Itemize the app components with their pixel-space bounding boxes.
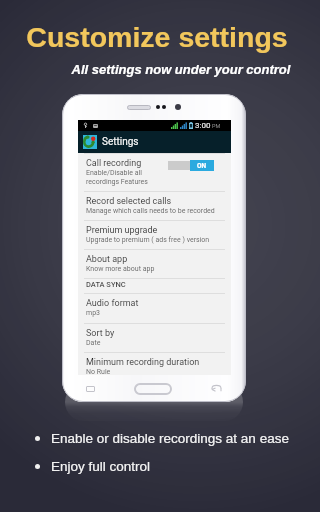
button[interactable]: Call recording <box>78 153 231 191</box>
staticText: Enable/Disable all recordings Features <box>86 169 148 186</box>
staticText: Enable or disable recordings at an ease <box>51 431 289 446</box>
staticText: ON <box>197 162 207 170</box>
staticText: All settings now under your control <box>21 62 320 77</box>
button[interactable]: Minimum recording duration <box>78 352 231 375</box>
staticText: Manage which calls needs to be recorded <box>86 207 215 215</box>
staticText: Sort by <box>86 328 115 339</box>
button[interactable]: Premium upgrade <box>78 220 231 249</box>
staticText: About app <box>86 254 128 265</box>
staticText: DATA SYNC <box>86 280 126 289</box>
button[interactable]: Audio format <box>78 293 231 323</box>
staticText: Minimum recording duration <box>86 357 200 368</box>
staticText: Upgrade to premium ( ads free ) version <box>86 236 210 244</box>
staticText: Customize settings <box>0 21 317 53</box>
button[interactable]: ON <box>168 160 214 171</box>
staticText: Premium upgrade <box>86 225 158 236</box>
staticText: Audio format <box>86 298 139 309</box>
staticText: Date <box>86 339 101 347</box>
button[interactable]: Sort by <box>78 323 231 352</box>
staticText: No Rule <box>86 368 111 375</box>
button[interactable]: About app <box>78 249 231 278</box>
staticText: Enjoy full control <box>51 459 151 474</box>
staticText: mp3 <box>86 309 101 317</box>
staticText: PM <box>212 123 221 129</box>
staticText: Record selected calls <box>86 196 172 207</box>
staticText: Settings <box>102 136 139 148</box>
staticText: 3:00 <box>195 121 211 130</box>
staticText: Call recording <box>86 158 142 169</box>
staticText: Know more about app <box>86 265 155 273</box>
button[interactable]: Record selected calls <box>78 191 231 220</box>
